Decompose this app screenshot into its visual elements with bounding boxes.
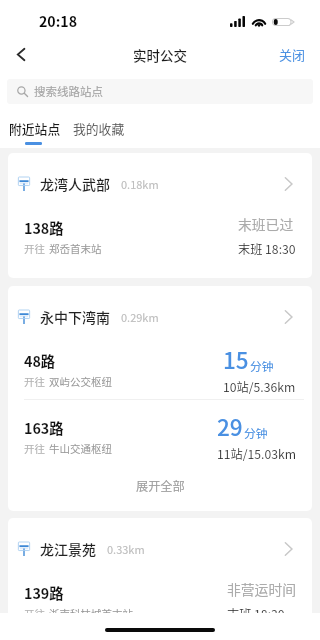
staticText: 开往: [24, 241, 45, 256]
staticText: 分钟: [244, 424, 268, 441]
button[interactable]: 永中下湾南: [8, 286, 312, 511]
staticText: 搜索线路站点: [34, 83, 103, 100]
button[interactable]: Back: [0, 38, 41, 71]
staticText: 龙江景苑: [40, 539, 96, 559]
staticText: 末班 18:30: [238, 240, 296, 258]
staticText: 末班 18:30: [227, 605, 285, 623]
staticText: 龙湾人武部: [40, 174, 110, 194]
staticText: 20:18: [39, 11, 78, 32]
staticText: 郑岙首末站: [49, 241, 102, 256]
staticText: 我的收藏: [73, 119, 125, 138]
staticText: 138路: [24, 217, 64, 238]
staticText: 11站/15.03km: [217, 445, 296, 463]
staticText: 开往: [24, 606, 45, 621]
staticText: 末班已过: [238, 214, 294, 234]
button[interactable]: 龙江景苑: [8, 518, 312, 640]
button[interactable]: 附近站点: [3, 117, 67, 147]
staticText: 开往: [24, 441, 45, 456]
staticText: 牛山交通枢纽: [49, 441, 112, 456]
staticText: 非营运时间: [227, 579, 296, 599]
staticText: 0.29km: [121, 309, 159, 325]
button[interactable]: 搜索线路站点: [7, 79, 313, 104]
staticText: 10站/5.36km: [223, 378, 296, 396]
staticText: 163路: [24, 417, 64, 438]
staticText: 0.18km: [121, 176, 159, 192]
staticText: 关闭: [279, 45, 306, 64]
staticText: 29: [217, 410, 243, 443]
button[interactable]: 展开全部: [8, 466, 312, 511]
button[interactable]: 我的收藏: [67, 117, 131, 147]
staticText: 永中下湾南: [40, 307, 110, 327]
staticText: 0.33km: [107, 541, 145, 557]
staticText: 分钟: [250, 357, 274, 374]
staticText: 附近站点: [9, 119, 61, 138]
staticText: 实时公交: [133, 45, 187, 65]
button[interactable]: 龙湾人武部: [8, 153, 312, 278]
staticText: 48路: [24, 350, 56, 371]
staticText: 15: [223, 343, 249, 376]
staticText: 双屿公交枢纽: [49, 374, 112, 389]
staticText: 开往: [24, 374, 45, 389]
button[interactable]: 关闭: [269, 39, 320, 70]
staticText: 浙南科技城首末站: [49, 606, 133, 621]
staticText: 展开全部: [136, 477, 185, 495]
staticText: 139路: [24, 582, 64, 603]
